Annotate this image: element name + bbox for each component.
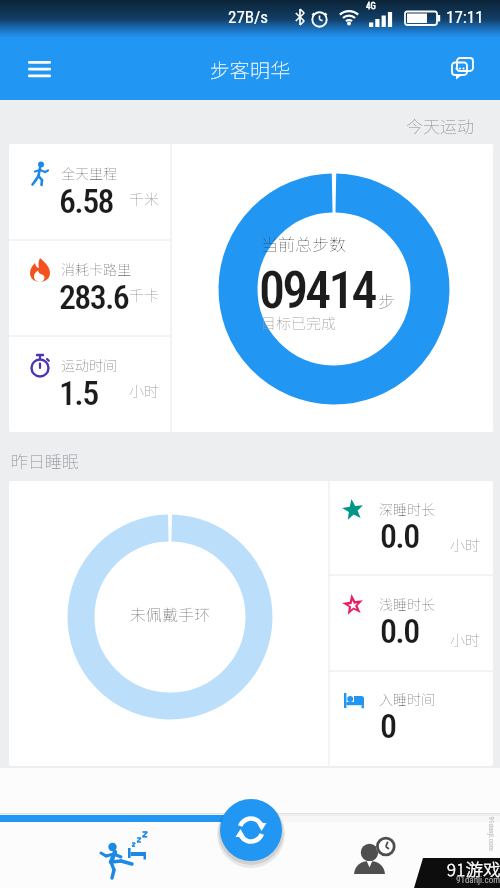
button[interactable] bbox=[443, 49, 483, 89]
staticText: 6.58 bbox=[59, 181, 113, 221]
button[interactable] bbox=[220, 799, 282, 861]
staticText: 目标已完成 bbox=[261, 312, 337, 334]
staticText: 今天运动 bbox=[406, 113, 474, 138]
staticText: 09414 bbox=[259, 260, 375, 321]
button[interactable] bbox=[16, 46, 62, 92]
staticText: 千米 bbox=[129, 188, 160, 210]
staticText: 91danji.com bbox=[456, 875, 500, 886]
staticText: 27B/s bbox=[228, 7, 269, 27]
staticText: 运动时间 bbox=[61, 355, 117, 375]
staticText: 入睡时间 bbox=[379, 689, 435, 709]
staticText: 0 bbox=[380, 706, 396, 746]
staticText: 步 bbox=[378, 288, 395, 313]
staticText: 0.0 bbox=[380, 611, 419, 651]
staticText: 91游戏 bbox=[447, 856, 500, 881]
staticText: 消耗卡路里 bbox=[61, 259, 131, 279]
button[interactable]: 浅睡时长 bbox=[329, 576, 493, 671]
button[interactable] bbox=[340, 823, 410, 883]
staticText: 91danji.com bbox=[486, 816, 494, 851]
staticText: 未佩戴手环 bbox=[130, 602, 211, 625]
staticText: 深睡时长 bbox=[379, 499, 435, 519]
staticText: 浅睡时长 bbox=[379, 594, 435, 614]
button[interactable]: 运动时间 bbox=[10, 336, 171, 432]
staticText: 步客明华 bbox=[210, 55, 290, 84]
staticText: 4G bbox=[366, 1, 376, 12]
staticText: 小时 bbox=[450, 629, 481, 651]
staticText: 千卡 bbox=[129, 284, 160, 306]
button[interactable]: 全天里程 bbox=[10, 144, 171, 240]
staticText: 当前总步数 bbox=[261, 231, 346, 256]
button[interactable]: 深睡时长 bbox=[329, 481, 493, 576]
staticText: 昨日睡眠 bbox=[11, 448, 79, 473]
staticText: 小时 bbox=[450, 534, 481, 556]
staticText: 283.6 bbox=[59, 277, 129, 317]
button[interactable] bbox=[88, 823, 160, 883]
staticText: 17:11 bbox=[446, 7, 484, 27]
button[interactable]: 入睡时间 bbox=[329, 671, 493, 766]
staticText: 全天里程 bbox=[61, 163, 117, 183]
staticText: 小时 bbox=[129, 380, 160, 402]
staticText: 1.5 bbox=[59, 373, 98, 413]
staticText: 0.0 bbox=[380, 516, 419, 556]
button[interactable]: 消耗卡路里 bbox=[10, 240, 171, 336]
